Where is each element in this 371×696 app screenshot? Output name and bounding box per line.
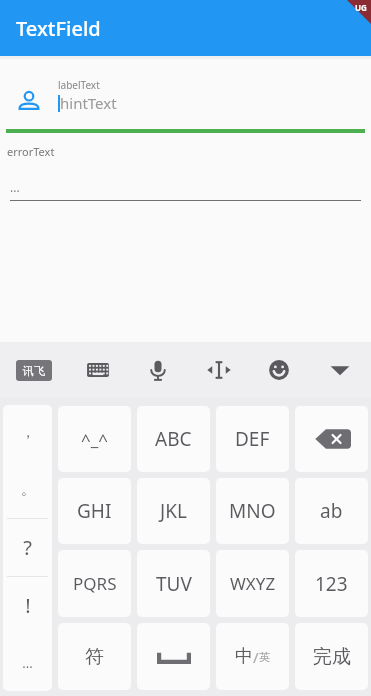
staticText: DEF	[235, 426, 270, 452]
button[interactable]: PQRS	[58, 550, 131, 617]
other: Person	[16, 88, 42, 114]
staticText: UG	[355, 2, 367, 13]
button[interactable]: DEF	[216, 406, 289, 472]
staticText: ...	[22, 654, 33, 672]
staticText: ^_^	[81, 428, 108, 451]
staticText: ?	[23, 534, 32, 561]
button[interactable]: ^_^	[58, 406, 131, 472]
staticText: !	[25, 592, 31, 619]
staticText: 英	[259, 650, 270, 664]
staticText: ...	[10, 179, 20, 195]
button[interactable]: Keyboard layout	[73, 350, 123, 390]
button[interactable]: 符	[58, 623, 131, 690]
staticText: 符	[85, 645, 104, 669]
staticText: TUV	[156, 571, 192, 597]
staticText: 。	[21, 481, 35, 499]
button[interactable]: Voice input	[133, 350, 183, 390]
staticText: ab	[320, 498, 343, 524]
button[interactable]: Move cursor	[194, 350, 244, 390]
button[interactable]: Hide keyboard	[315, 350, 365, 390]
button[interactable]: ABC	[137, 406, 210, 472]
staticText: WXYZ	[230, 572, 276, 595]
button[interactable]: Space	[137, 623, 210, 690]
staticText: 123	[315, 571, 348, 597]
button[interactable]: ，	[3, 405, 52, 461]
button[interactable]: 123	[295, 550, 368, 617]
button[interactable]: ?	[3, 519, 52, 576]
staticText: MNO	[229, 498, 276, 524]
staticText: JKL	[160, 498, 187, 524]
button[interactable]: JKL	[137, 478, 210, 544]
staticText: ABC	[155, 426, 192, 452]
button[interactable]: Emoji	[254, 350, 304, 390]
staticText: /	[253, 647, 259, 667]
button[interactable]: WXYZ	[216, 550, 289, 617]
staticText: 中	[235, 645, 253, 668]
staticText: hintText	[60, 93, 117, 113]
button[interactable]: 中	[216, 623, 289, 690]
staticText: labelText	[58, 78, 100, 92]
staticText: PQRS	[73, 572, 117, 595]
staticText: GHI	[77, 498, 112, 524]
button[interactable]: Backspace	[295, 406, 368, 472]
staticText: TextField	[16, 15, 101, 42]
staticText: 讯飞	[23, 364, 45, 378]
button[interactable]: MNO	[216, 478, 289, 544]
button[interactable]: Xunfei IME	[6, 350, 62, 390]
button[interactable]: GHI	[58, 478, 131, 544]
button[interactable]: 完成	[295, 623, 368, 690]
button[interactable]: TUV	[137, 550, 210, 617]
staticText: errorText	[7, 144, 55, 159]
button[interactable]: ...	[3, 634, 52, 691]
staticText: ，	[21, 424, 35, 442]
button[interactable]: !	[3, 577, 52, 634]
button[interactable]: 。	[3, 461, 52, 518]
button[interactable]: ab	[295, 478, 368, 544]
staticText: 完成	[313, 645, 351, 669]
